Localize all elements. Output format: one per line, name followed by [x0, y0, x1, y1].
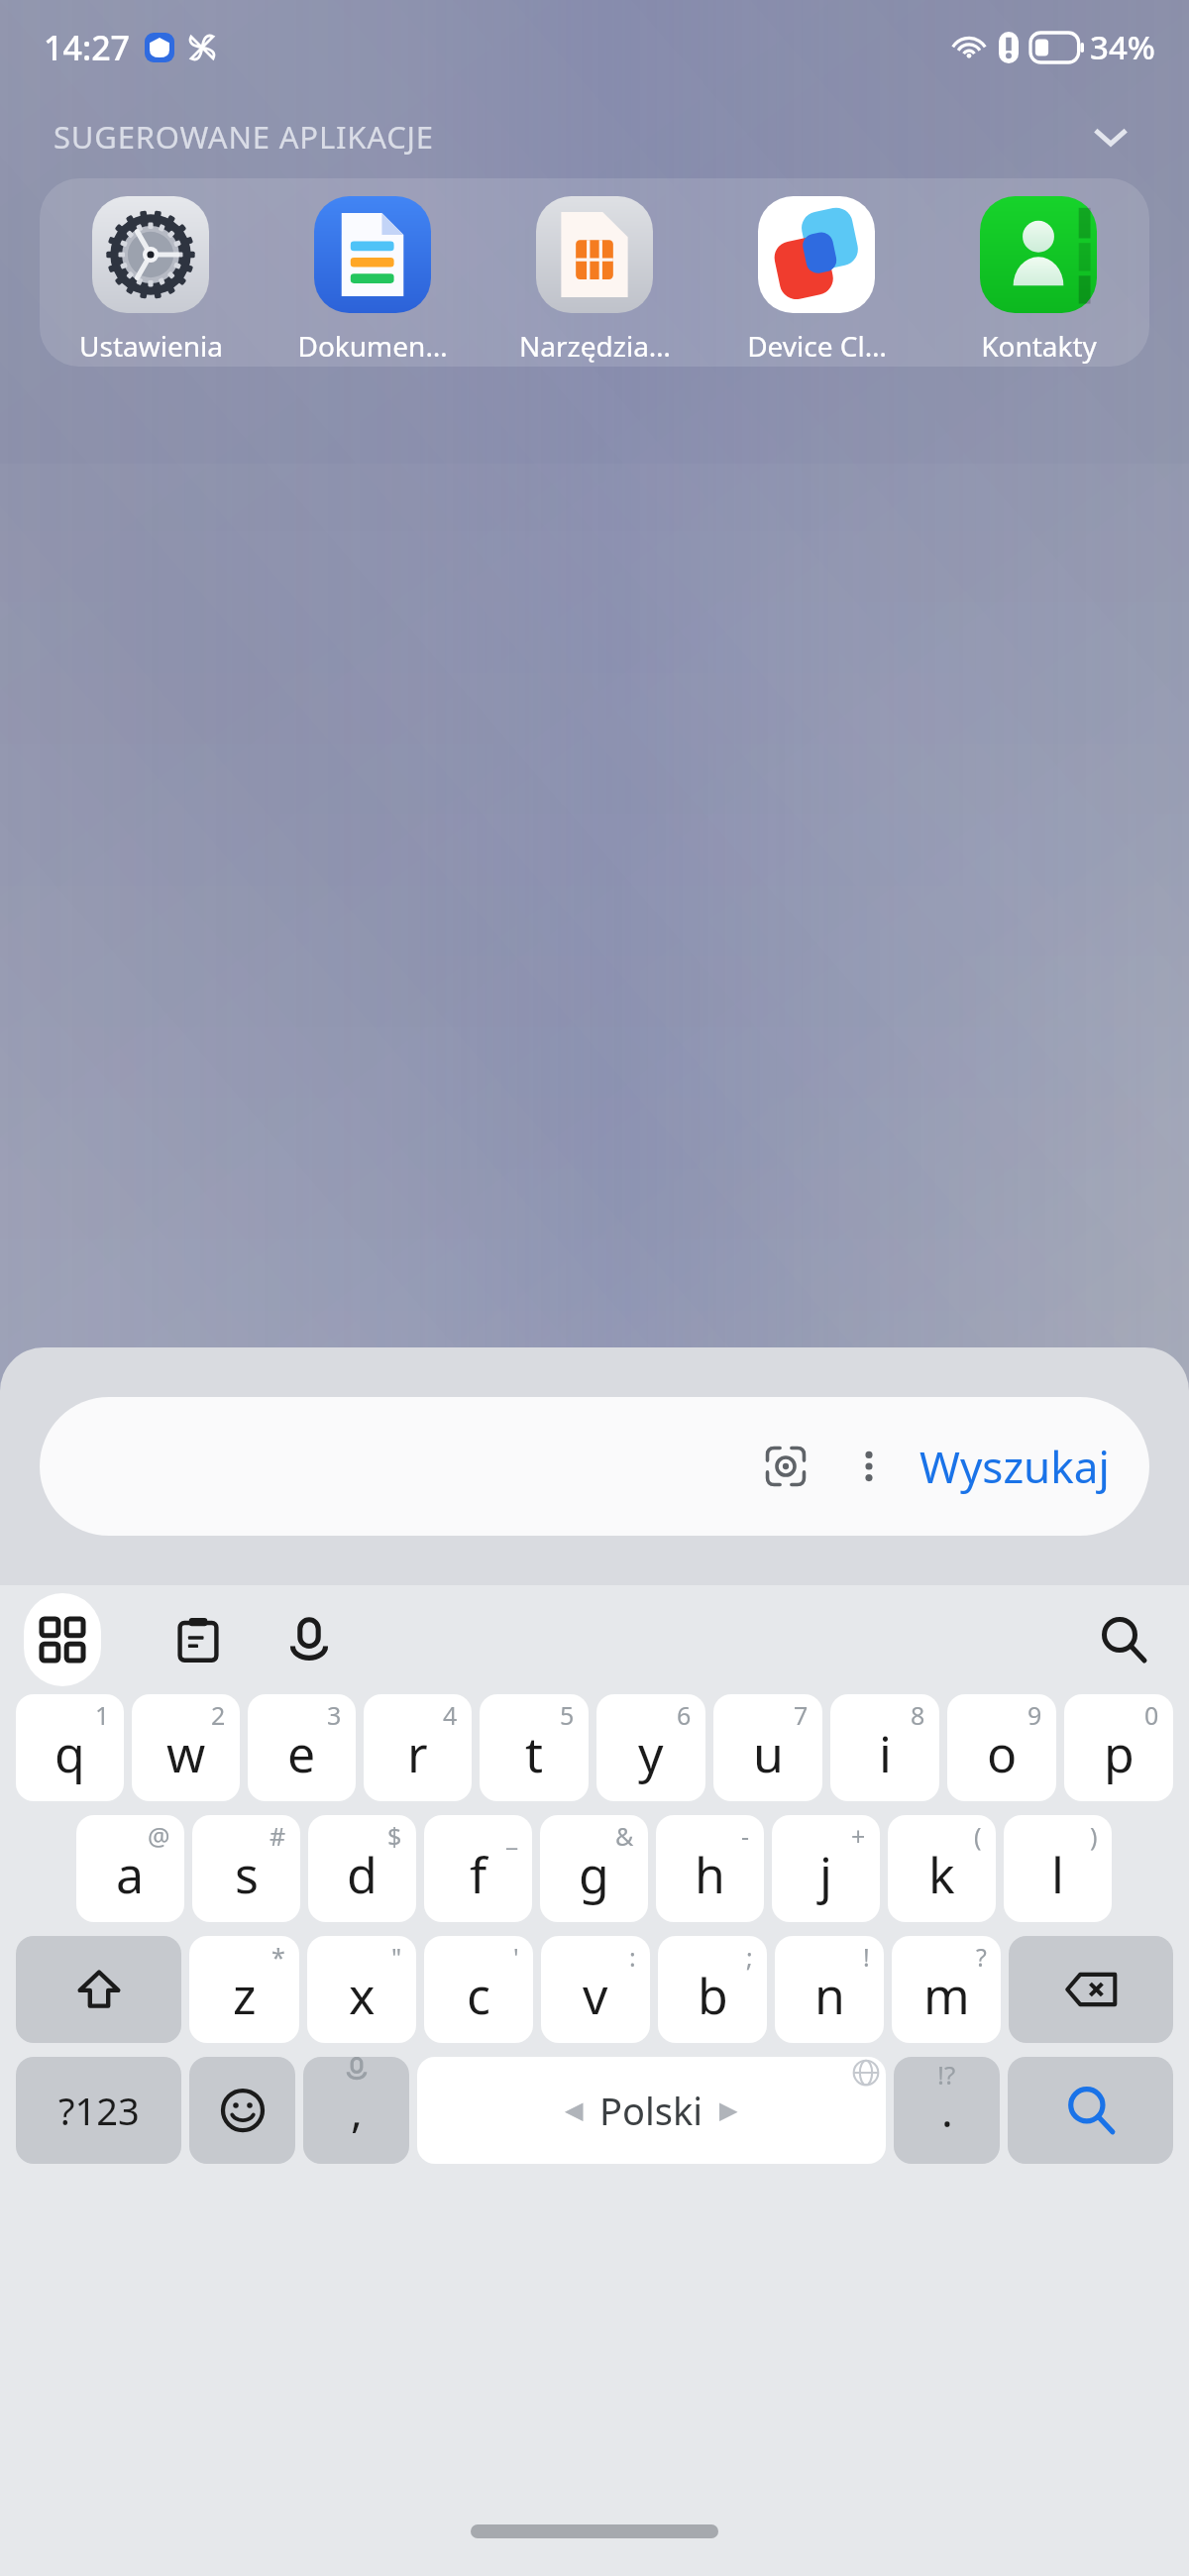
staticText: x [349, 1962, 376, 2029]
button[interactable]: Dokumen… [262, 178, 484, 367]
staticText: @ [148, 1819, 170, 1853]
staticText: 0 [1144, 1698, 1159, 1732]
staticText: m [923, 1962, 970, 2029]
button[interactable]: Szukaj [1008, 2057, 1173, 2164]
staticText: 4 [443, 1698, 458, 1732]
button[interactable]: ; [658, 1936, 767, 2043]
staticText: l [1051, 1841, 1064, 1908]
button[interactable]: Device Cl… [705, 178, 927, 367]
staticText: p [1104, 1720, 1135, 1787]
staticText: Kontakty [981, 327, 1097, 365]
button[interactable]: & [540, 1815, 648, 1922]
staticText: 1 [95, 1698, 110, 1732]
staticText: ! [863, 1940, 870, 1974]
button[interactable]: Obiektyw [749, 1430, 822, 1503]
staticText: ' [513, 1940, 519, 1974]
button[interactable]: $ [308, 1815, 416, 1922]
button[interactable]: - [656, 1815, 764, 1922]
button[interactable]: Ustawienia [40, 178, 262, 367]
staticText: ; [746, 1940, 753, 1974]
button[interactable]: Schowek [159, 1600, 238, 1679]
button[interactable]: Backspace [1009, 1936, 1173, 2043]
button[interactable]: * [189, 1936, 299, 2043]
staticText: !? [937, 2057, 956, 2092]
staticText: ) [1090, 1819, 1098, 1853]
staticText: ▶ [719, 2096, 738, 2124]
staticText: o [987, 1720, 1018, 1787]
staticText: j [819, 1841, 832, 1908]
staticText: t [525, 1720, 544, 1787]
button[interactable]: Więcej opcji [834, 1432, 904, 1501]
staticText: Device Cl… [747, 327, 887, 365]
staticText: ◀ [565, 2096, 584, 2124]
button[interactable]: Zwiń sugerowane aplikacje [1076, 102, 1145, 171]
button[interactable]: 1 [16, 1694, 124, 1801]
staticText: z [233, 1962, 257, 2029]
staticText: 7 [794, 1698, 809, 1732]
button[interactable]: Obiektyw [40, 1397, 1149, 1536]
staticText: 8 [911, 1698, 925, 1732]
staticText: w [166, 1720, 206, 1787]
staticText: + [851, 1819, 866, 1853]
staticText: b [698, 1962, 728, 2029]
button[interactable]: # [192, 1815, 300, 1922]
staticText: i [879, 1720, 892, 1787]
button[interactable]: Menu klawiatury [24, 1593, 101, 1686]
staticText: SUGEROWANE APLIKACJE [54, 116, 434, 158]
button[interactable]: 3 [248, 1694, 356, 1801]
button[interactable]: 7 [713, 1694, 822, 1801]
staticText: ?123 [58, 2085, 140, 2136]
button[interactable]: 8 [830, 1694, 939, 1801]
staticText: - [741, 1819, 750, 1853]
staticText: * [271, 1940, 285, 1974]
staticText: n [814, 1962, 845, 2029]
button[interactable]: Dyktowanie głosowe [270, 1600, 349, 1679]
staticText: u [753, 1720, 784, 1787]
button[interactable]: 0 [1064, 1694, 1173, 1801]
button[interactable]: " [307, 1936, 416, 2043]
button[interactable]: ) [1004, 1815, 1112, 1922]
button[interactable]: 9 [947, 1694, 1056, 1801]
button[interactable]: 5 [480, 1694, 589, 1801]
staticText: Ustawienia [79, 327, 223, 365]
button[interactable]: @ [76, 1815, 184, 1922]
staticText: f [470, 1841, 487, 1908]
staticText: Dokumen… [297, 327, 448, 365]
button[interactable]: ◀ [417, 2057, 886, 2164]
button[interactable]: Shift [16, 1936, 181, 2043]
staticText: 14:27 [44, 25, 131, 70]
button[interactable]: ?123 [16, 2057, 181, 2164]
staticText: a [116, 1841, 145, 1908]
staticText: k [928, 1841, 955, 1908]
button[interactable]: : [541, 1936, 650, 2043]
button[interactable]: 6 [596, 1694, 705, 1801]
staticText: g [579, 1841, 609, 1908]
button[interactable]: ? [892, 1936, 1001, 2043]
button[interactable]: ' [424, 1936, 533, 2043]
staticText: 3 [327, 1698, 342, 1732]
staticText: 2 [211, 1698, 226, 1732]
button[interactable]: Wyszukaj [919, 1437, 1149, 1496]
staticText: r [407, 1720, 428, 1787]
staticText: # [270, 1819, 286, 1853]
button[interactable]: , [303, 2057, 409, 2164]
staticText: " [391, 1940, 402, 1974]
button[interactable]: ! [775, 1936, 884, 2043]
button[interactable]: !? [894, 2057, 1000, 2164]
button[interactable]: Szukaj [1082, 1598, 1165, 1681]
button[interactable]: + [772, 1815, 880, 1922]
button[interactable]: 2 [132, 1694, 240, 1801]
staticText: $ [387, 1819, 402, 1853]
button[interactable]: Narzędzia… [484, 178, 705, 367]
staticText: h [695, 1841, 725, 1908]
staticText: d [347, 1841, 378, 1908]
button[interactable]: Emotikony [189, 2057, 295, 2164]
button[interactable]: ( [888, 1815, 996, 1922]
staticText: & [615, 1819, 634, 1853]
button[interactable]: Kontakty [927, 178, 1149, 367]
button[interactable]: 4 [364, 1694, 472, 1801]
staticText: Narzędzia… [519, 327, 671, 365]
staticText: y [638, 1720, 664, 1787]
staticText: Polski [599, 2085, 703, 2136]
button[interactable]: _ [424, 1815, 532, 1922]
